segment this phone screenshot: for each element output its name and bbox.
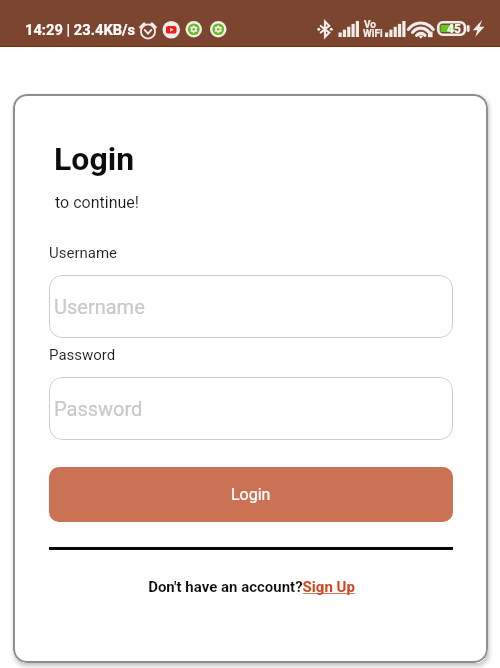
staticText: Username (54, 295, 145, 318)
staticText: Password (49, 346, 116, 364)
button[interactable]: Username (49, 275, 453, 338)
staticText: Vo (364, 19, 376, 31)
staticText: Password (54, 397, 143, 420)
staticText: to continue! (55, 193, 139, 212)
staticText: Login (231, 485, 271, 504)
staticText: Login (54, 140, 135, 178)
staticText: WiFi (363, 28, 383, 40)
staticText: Username (49, 244, 118, 262)
staticText: 14:29 | 23.4KB/s (25, 21, 136, 38)
button[interactable]: Login (49, 467, 453, 522)
button[interactable]: Don't have an account?Sign Up (49, 578, 453, 596)
staticText: Don't have an account?Sign Up (148, 578, 355, 596)
button[interactable]: Password (49, 377, 453, 440)
staticText: 45 (447, 22, 461, 36)
